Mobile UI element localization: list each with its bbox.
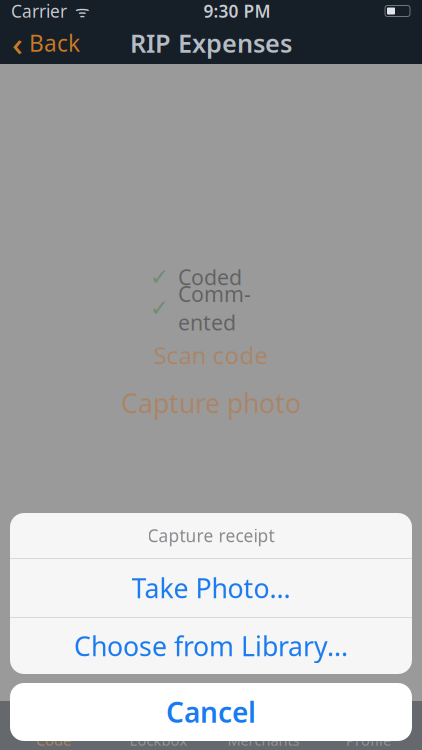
button[interactable]: Cancel <box>10 683 412 741</box>
staticText: Coded <box>178 263 242 291</box>
staticText: Take Photo... <box>131 570 290 606</box>
staticText: Back <box>29 28 80 58</box>
button[interactable]: Choose from Library... <box>10 618 412 674</box>
staticText: Lockbox <box>129 730 187 750</box>
staticText: RIP Expenses <box>130 26 292 60</box>
staticText: Cancel <box>166 693 256 731</box>
staticText: Choose from Library... <box>74 628 348 664</box>
button[interactable]: ‹ <box>0 22 92 64</box>
staticText: Capture photo <box>121 385 301 421</box>
staticText: Code <box>36 730 71 750</box>
button[interactable]: Capture photo <box>81 387 341 419</box>
staticText: Scan code <box>153 339 268 371</box>
staticText: Profile <box>346 730 391 750</box>
button[interactable]: Lockbox <box>106 701 211 750</box>
staticText: Commented <box>178 280 251 336</box>
button[interactable]: Code <box>1 701 106 750</box>
button[interactable]: Take Photo... <box>10 559 412 617</box>
staticText: ‹ <box>12 21 23 65</box>
staticText: ✓ <box>150 264 169 290</box>
staticText: 9:30 PM <box>203 0 270 22</box>
staticText: ✓ <box>150 295 169 321</box>
button[interactable]: Merchants <box>211 701 316 750</box>
staticText: ᯤ <box>67 0 90 22</box>
button[interactable]: Profile <box>316 701 421 750</box>
button[interactable]: Scan code <box>81 339 341 371</box>
staticText: Merchants <box>227 730 299 750</box>
staticText: Carrier <box>11 0 67 22</box>
staticText: Capture receipt <box>147 524 274 547</box>
